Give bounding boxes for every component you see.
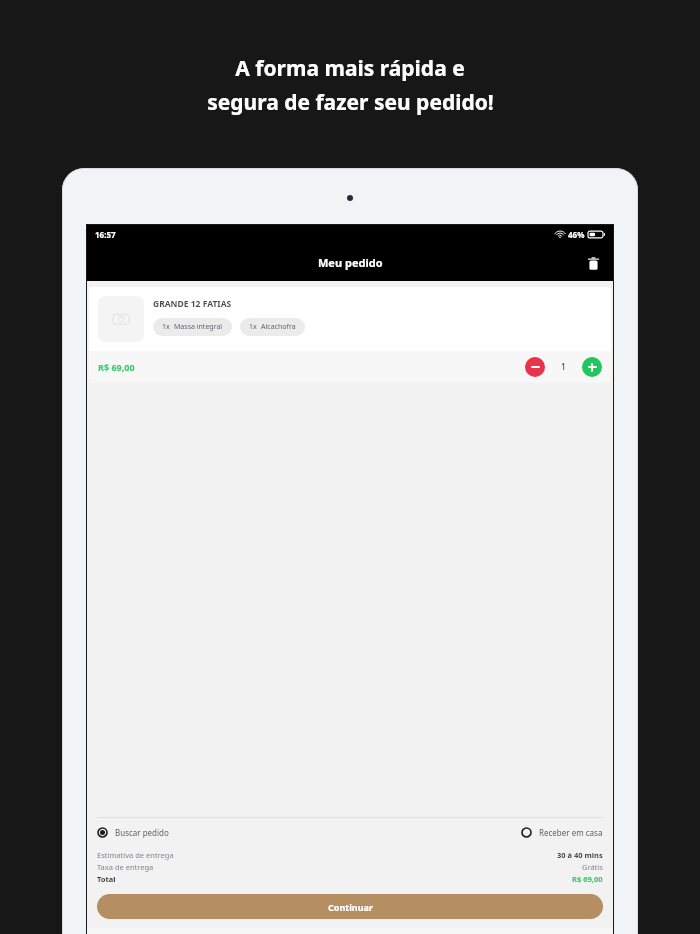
staticText: 46%	[568, 229, 585, 240]
button[interactable]: Home	[86, 928, 218, 934]
staticText: GRANDE 12 FATIAS	[153, 298, 232, 310]
staticText: Alcachofra	[261, 322, 296, 332]
staticText: Grátis	[582, 862, 603, 872]
staticText: 30 à 40 mins	[557, 850, 603, 860]
staticText: Meu pedido	[318, 255, 383, 270]
staticText: Buscar pedido	[115, 827, 169, 838]
button[interactable]: Diminuir quantidade	[525, 357, 545, 377]
staticText: Receber em casa	[539, 827, 603, 838]
staticText: 1x	[249, 322, 257, 332]
staticText: 1	[561, 361, 566, 373]
staticText: Taxa de entrega	[97, 862, 154, 872]
button[interactable]: 1x	[240, 318, 305, 336]
staticText: Estimativa de entrega	[97, 850, 174, 860]
button[interactable]: GRANDE 12 FATIAS	[89, 287, 611, 383]
staticText: R$ 69,00	[572, 874, 603, 884]
button[interactable]: Conta	[482, 928, 614, 934]
staticText: 16:57	[95, 229, 116, 240]
button[interactable]: 1x	[153, 318, 232, 336]
button[interactable]: Excluir pedido	[580, 250, 606, 276]
staticText: Continuar	[328, 901, 373, 913]
staticText: segura de fazer seu pedido!	[207, 88, 494, 117]
staticText: Massa integral	[174, 322, 223, 332]
staticText: R$ 69,00	[98, 361, 135, 373]
button[interactable]: Receber em casa	[521, 827, 603, 838]
button[interactable]: Aumentar quantidade	[582, 357, 602, 377]
staticText: 1x	[162, 322, 170, 332]
staticText: A forma mais rápida e	[235, 54, 465, 83]
staticText: Total	[97, 874, 116, 884]
button[interactable]: Buscar pedido	[97, 827, 169, 838]
button[interactable]: Continuar	[97, 894, 603, 919]
